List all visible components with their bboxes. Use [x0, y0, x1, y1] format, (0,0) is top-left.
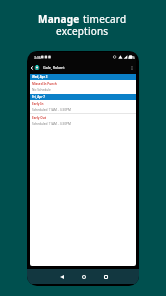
staticText: Scheduled 11AM - 3:30PM	[32, 122, 71, 126]
staticText: Fri, Apr 7	[32, 95, 45, 99]
button[interactable]: Back	[57, 272, 66, 281]
staticText: Missed In Punch	[32, 82, 57, 86]
button[interactable]: Home	[79, 272, 88, 281]
staticText: exceptions	[56, 24, 109, 38]
button[interactable]: Back	[28, 64, 36, 72]
staticText: Scheduled 11AM - 3:30PM	[32, 108, 71, 112]
button[interactable]: Early Out	[30, 114, 136, 127]
button[interactable]: Early In	[30, 100, 136, 114]
staticText: timecard	[83, 12, 127, 26]
staticText: Early In	[32, 102, 44, 106]
button[interactable]: Missed In Punch	[30, 80, 136, 94]
button[interactable]: Recents	[101, 272, 110, 281]
staticText: Early Out	[32, 116, 47, 120]
staticText: Manage	[38, 12, 83, 26]
staticText: No Schedule	[32, 88, 51, 92]
staticText: Wed, Apr 3	[32, 75, 48, 79]
button[interactable]: More options	[128, 64, 136, 72]
staticText: 3:36	[34, 55, 41, 60]
staticText: Gale, Robert	[43, 65, 65, 70]
staticText: 46%	[128, 55, 135, 60]
